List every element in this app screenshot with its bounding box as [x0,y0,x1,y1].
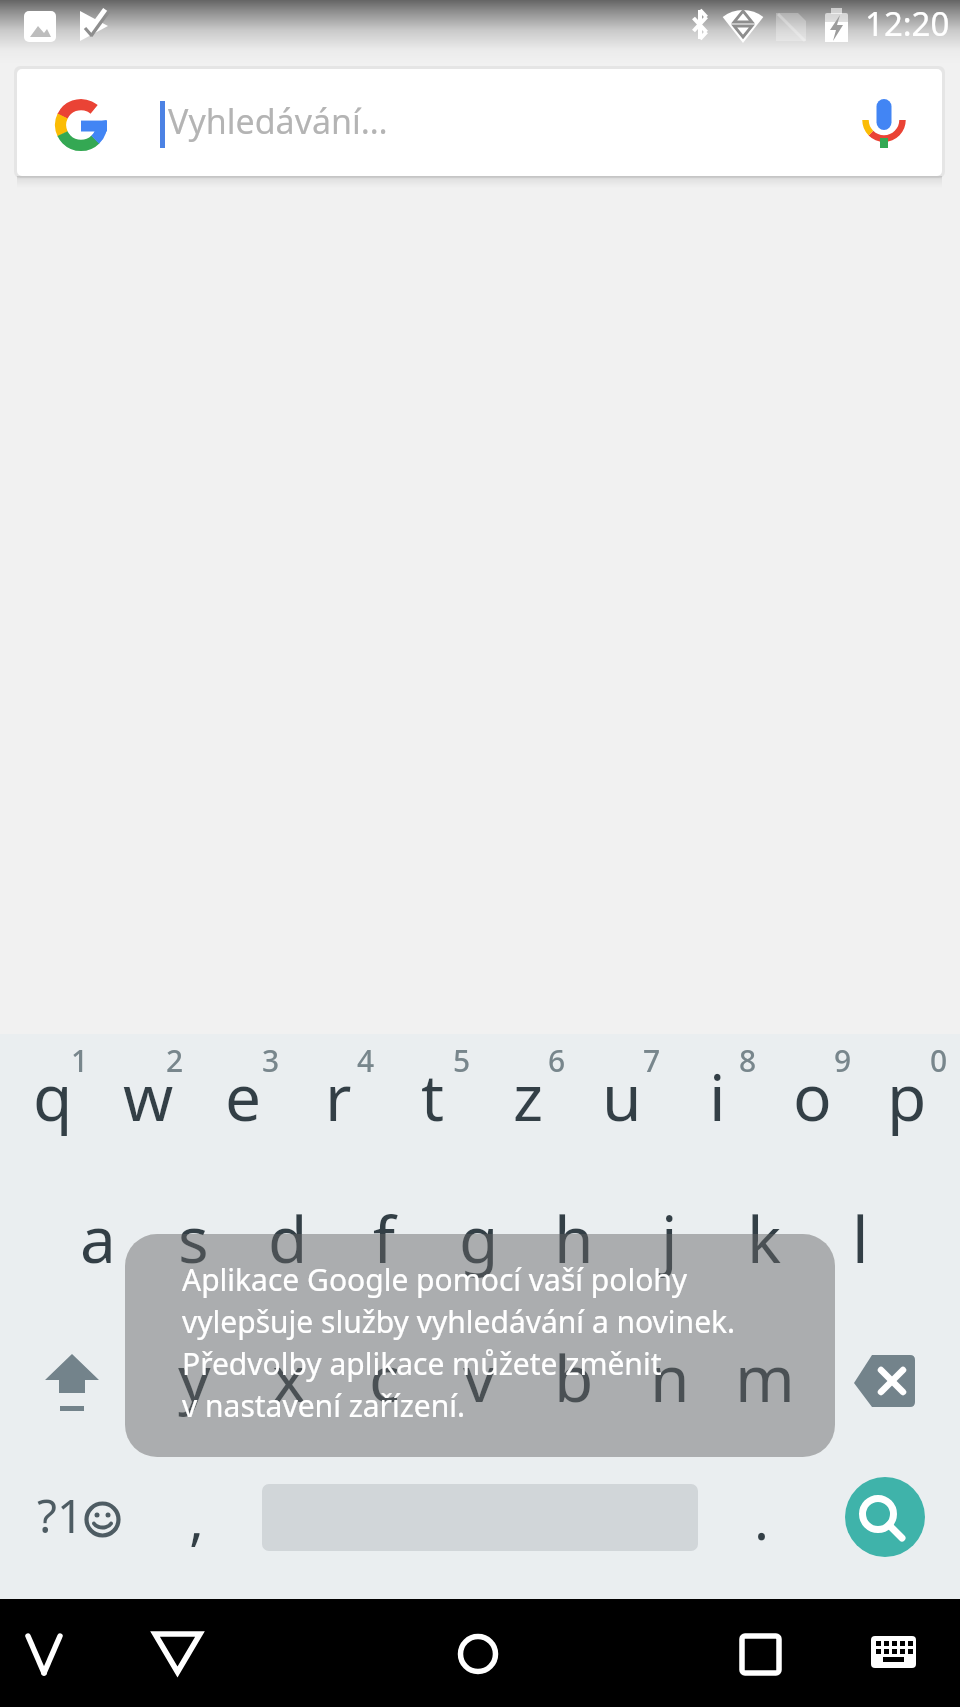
staticText: 0 [930,1040,948,1081]
button[interactable]: Back [110,1599,240,1707]
button[interactable]: f [336,1173,432,1312]
staticText: k [747,1195,782,1282]
staticText: 9 [834,1040,852,1081]
button[interactable]: m [720,1312,816,1451]
staticText: q [33,1053,73,1140]
staticText: 1 [71,1040,89,1081]
staticText: m [735,1334,795,1421]
button[interactable]: Vyhledávání… [17,69,942,176]
button[interactable]: e [192,1034,288,1173]
staticText: h [554,1195,594,1282]
button[interactable]: t [384,1034,480,1173]
staticText: , [189,1480,205,1556]
staticText: g [459,1195,499,1282]
staticText: j [661,1195,678,1282]
button[interactable]: o [768,1034,864,1173]
button[interactable]: h [528,1173,624,1312]
button[interactable]: . [698,1451,800,1599]
button[interactable]: a [48,1173,144,1312]
staticText: v [463,1334,496,1421]
staticText: i [709,1053,726,1140]
staticText: p [887,1053,927,1140]
button[interactable]: Backspace [816,1312,960,1451]
staticText: Vyhledávání… [168,98,388,144]
button[interactable]: Voice search [856,95,912,151]
button[interactable]: q [0,1034,96,1173]
button[interactable]: j [624,1173,720,1312]
button[interactable]: Recent apps [690,1599,830,1707]
button[interactable]: y [144,1312,240,1451]
button[interactable]: v [432,1312,528,1451]
button[interactable]: Hide keyboard [0,1599,110,1707]
staticText: 5 [453,1040,471,1081]
staticText: 8 [739,1040,757,1081]
staticText: l [852,1195,869,1282]
staticText: b [554,1334,594,1421]
button[interactable]: Home [400,1599,560,1707]
staticText: e [225,1053,262,1140]
button[interactable]: l [816,1173,912,1312]
button[interactable]: r [288,1034,384,1173]
button[interactable]: n [624,1312,720,1451]
staticText: o [793,1053,832,1140]
staticText: f [373,1195,396,1282]
staticText: y [178,1334,211,1421]
staticText: a [80,1195,116,1282]
button[interactable]: p [864,1034,960,1173]
staticText: z [513,1053,544,1140]
button[interactable]: Switch keyboard [830,1599,960,1707]
staticText: u [602,1053,642,1140]
staticText: 6 [548,1040,566,1081]
staticText: 12:20 [865,1,950,46]
staticText: x [272,1334,306,1421]
staticText: c [369,1334,400,1421]
button[interactable]: c [336,1312,432,1451]
button[interactable]: d [240,1173,336,1312]
button[interactable]: Search [845,1477,925,1557]
button[interactable]: , [160,1451,262,1599]
button[interactable]: ?1 [0,1451,160,1599]
button[interactable]: k [720,1173,816,1312]
staticText: ?1 [37,1484,84,1547]
button[interactable]: Shift [0,1312,144,1451]
staticText: w [123,1053,174,1140]
button[interactable]: z [480,1034,576,1173]
button[interactable]: g [432,1173,528,1312]
staticText: 2 [166,1040,184,1081]
button[interactable]: s [144,1173,240,1312]
staticText: 4 [357,1040,375,1081]
button[interactable]: x [240,1312,336,1451]
staticText: d [268,1195,308,1282]
button[interactable]: u [576,1034,672,1173]
staticText: Aplikace Google pomocí vaší polohy vylep… [182,1259,736,1426]
button[interactable]: b [528,1312,624,1451]
staticText: s [178,1195,209,1282]
button[interactable]: i [672,1034,768,1173]
staticText: t [421,1053,445,1140]
staticText: . [754,1480,770,1556]
staticText: n [650,1334,690,1421]
staticText: 7 [643,1040,661,1081]
staticText: r [325,1053,352,1140]
button[interactable]: w [96,1034,192,1173]
staticText: 3 [262,1040,280,1081]
